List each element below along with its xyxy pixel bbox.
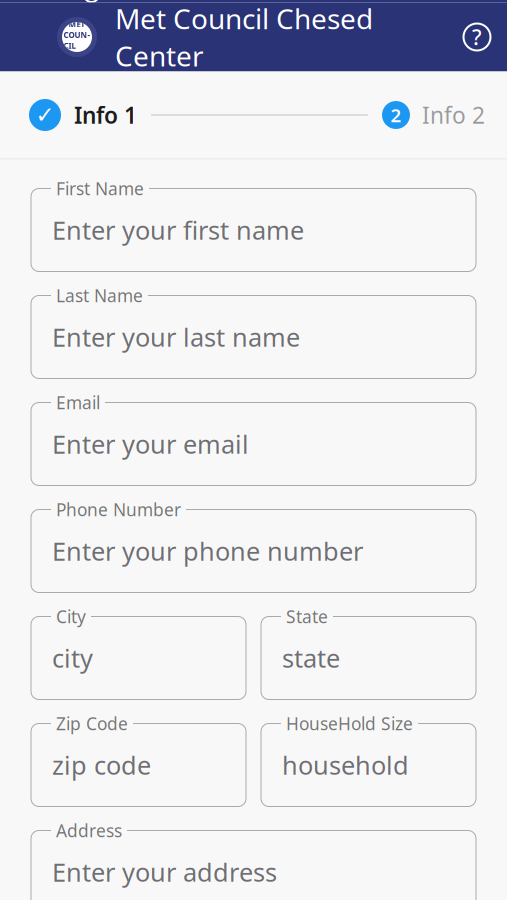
staticText: Address <box>56 819 122 842</box>
button[interactable]: city <box>31 616 246 699</box>
staticText: COUNCIL <box>63 30 90 51</box>
staticText: Info 1 <box>74 100 137 130</box>
staticText: Last Name <box>56 284 143 307</box>
button[interactable]: zip code <box>31 723 246 806</box>
staticText: Carrier <box>14 0 77 3</box>
staticText: Enter your first name <box>52 213 304 247</box>
staticText: city <box>52 641 93 675</box>
button[interactable]: household <box>261 723 476 806</box>
staticText: ? <box>472 23 482 51</box>
button[interactable]: Help <box>455 15 499 59</box>
staticText: Info 2 <box>422 100 485 130</box>
staticText: Enter your last name <box>52 320 300 354</box>
staticText: Zip Code <box>56 712 128 735</box>
button[interactable]: state <box>261 616 476 699</box>
staticText: ✓ <box>35 102 54 128</box>
staticText: Met Council Chesed Center <box>115 0 373 74</box>
staticText: household <box>282 748 409 782</box>
staticText: First Name <box>56 177 144 200</box>
staticText: zip code <box>52 748 151 782</box>
button[interactable]: 2 <box>382 100 485 130</box>
staticText: state <box>282 641 340 675</box>
staticText: 2 <box>390 103 401 127</box>
staticText: City <box>56 605 86 628</box>
button[interactable]: Enter your first name <box>31 188 476 271</box>
staticText: Email <box>56 391 100 414</box>
staticText: Enter your email <box>52 427 249 461</box>
button[interactable]: ✓ <box>29 99 137 131</box>
staticText: 12:56 PM <box>212 0 294 3</box>
staticText: Phone Number <box>56 498 181 521</box>
button[interactable]: Enter your last name <box>31 295 476 378</box>
button[interactable]: Enter your email <box>31 402 476 485</box>
staticText: MET <box>68 19 85 30</box>
staticText: HouseHold Size <box>286 712 413 735</box>
button[interactable]: Enter your address <box>31 830 476 900</box>
staticText: Enter your address <box>52 855 277 889</box>
button[interactable]: Enter your phone number <box>31 509 476 592</box>
staticText: Enter your phone number <box>52 534 363 568</box>
staticText: State <box>286 605 328 628</box>
